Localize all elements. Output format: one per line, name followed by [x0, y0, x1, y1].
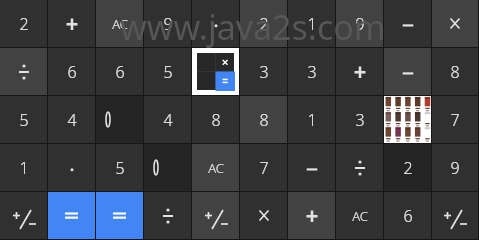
button[interactable]: 5 — [144, 48, 191, 95]
button[interactable]: 1 — [288, 0, 335, 47]
staticText: 8 — [450, 61, 460, 83]
staticText: 6 — [67, 61, 77, 83]
staticText: AC — [112, 15, 128, 33]
button[interactable]: Plus — [48, 0, 95, 47]
button[interactable]: 6 — [384, 192, 431, 239]
staticText: 5 — [115, 157, 125, 179]
button[interactable]: 1 — [288, 96, 335, 143]
staticText: 9 — [450, 157, 460, 179]
staticText: 6 — [403, 205, 413, 227]
staticText: 1 — [19, 157, 29, 179]
staticText: 8 — [259, 109, 269, 131]
staticText: 3 — [355, 109, 365, 131]
button[interactable]: 5 — [96, 144, 143, 191]
button[interactable]: 2 — [240, 0, 287, 47]
button[interactable]: 0 — [144, 144, 191, 191]
button[interactable]: 2 — [0, 0, 47, 47]
button[interactable]: 3 — [288, 48, 335, 95]
button[interactable]: Apps — [384, 96, 431, 143]
staticText: 8 — [211, 109, 221, 131]
button[interactable]: Decimal point — [192, 0, 239, 47]
button[interactable]: Divide — [0, 48, 47, 95]
button[interactable]: 7 — [240, 144, 287, 191]
button[interactable]: Decimal point — [48, 144, 95, 191]
button[interactable]: 8 — [192, 96, 239, 143]
button[interactable]: 2 — [384, 144, 431, 191]
staticText: 2 — [19, 13, 29, 35]
staticText: 9 — [355, 13, 365, 35]
button[interactable]: 6 — [48, 48, 95, 95]
button[interactable]: Minus — [288, 144, 335, 191]
staticText: 2 — [259, 13, 269, 35]
staticText: 1 — [307, 13, 317, 35]
staticText: www.java2s.com — [120, 4, 386, 50]
staticText: AC — [208, 159, 224, 177]
button[interactable]: AC — [192, 144, 239, 191]
button[interactable]: Equals — [96, 192, 143, 239]
button[interactable]: Calculator app — [192, 48, 239, 95]
staticText: 5 — [19, 109, 29, 131]
button[interactable]: Equals — [48, 192, 95, 239]
button[interactable]: Plus minus — [0, 192, 47, 239]
staticText: 3 — [259, 61, 269, 83]
button[interactable]: Plus — [336, 48, 383, 95]
button[interactable]: 8 — [240, 96, 287, 143]
staticText: 4 — [67, 109, 77, 131]
button[interactable]: 1 — [0, 144, 47, 191]
staticText: 7 — [259, 157, 269, 179]
staticText: 4 — [163, 109, 173, 131]
staticText: 7 — [450, 109, 460, 131]
button[interactable]: Divide — [336, 144, 383, 191]
button[interactable]: Minus — [384, 0, 431, 47]
button[interactable]: 9 — [144, 0, 191, 47]
button[interactable]: Divide — [144, 192, 191, 239]
staticText: 2 — [403, 157, 413, 179]
staticText: 5 — [163, 61, 173, 83]
button[interactable]: Plus minus — [192, 192, 239, 239]
button[interactable]: 6 — [96, 48, 143, 95]
button[interactable]: 8 — [432, 48, 478, 95]
button[interactable]: Multiply — [432, 0, 478, 47]
staticText: 1 — [307, 109, 317, 131]
button[interactable]: 0 — [96, 96, 143, 143]
button[interactable]: Plus — [288, 192, 335, 239]
button[interactable]: Multiply — [240, 192, 287, 239]
staticText: AC — [352, 207, 368, 225]
button[interactable]: 7 — [432, 96, 478, 143]
button[interactable]: 3 — [240, 48, 287, 95]
button[interactable]: 9 — [336, 0, 383, 47]
button[interactable]: 9 — [432, 144, 478, 191]
button[interactable]: AC — [96, 0, 143, 47]
button[interactable]: Minus — [384, 48, 431, 95]
button[interactable]: 4 — [144, 96, 191, 143]
staticText: 9 — [163, 13, 173, 35]
staticText: 3 — [307, 61, 317, 83]
button[interactable]: AC — [336, 192, 383, 239]
button[interactable]: 5 — [0, 96, 47, 143]
button[interactable]: Plus minus — [432, 192, 478, 239]
button[interactable]: 3 — [336, 96, 383, 143]
button[interactable]: 4 — [48, 96, 95, 143]
staticText: 6 — [115, 61, 125, 83]
